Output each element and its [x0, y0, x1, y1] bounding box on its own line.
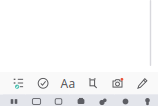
button[interactable]: Scan document [81, 73, 105, 93]
button[interactable]: Activity [92, 94, 114, 106]
button[interactable]: Smileys and people [25, 94, 47, 106]
button[interactable]: Travel and places [114, 94, 136, 106]
button[interactable]: Markup [131, 73, 155, 93]
button[interactable]: Mark as done [31, 73, 55, 93]
button[interactable]: Animals and nature [47, 94, 69, 106]
staticText: Aa [60, 75, 75, 91]
button[interactable]: Frequently used [3, 94, 25, 106]
button[interactable]: Objects [136, 94, 158, 106]
button[interactable]: Text formatting [56, 73, 80, 93]
button[interactable]: Food and drink [70, 94, 92, 106]
button[interactable]: Camera [106, 73, 130, 93]
button[interactable]: Checklist [6, 73, 30, 93]
